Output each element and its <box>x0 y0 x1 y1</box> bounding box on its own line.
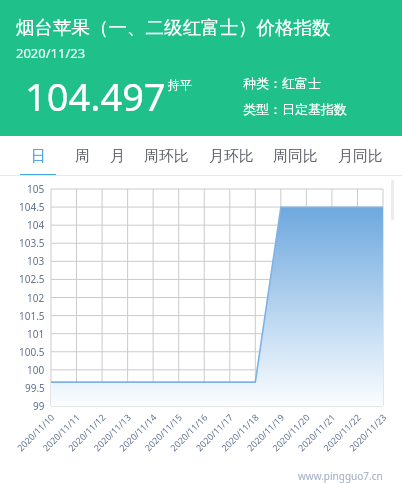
staticText: 持平 <box>168 77 192 92</box>
staticText: 月环比 <box>209 147 254 166</box>
staticText: 类型：日定基指数 <box>243 101 347 117</box>
button[interactable]: 月同比 <box>338 136 383 176</box>
button[interactable]: 周环比 <box>144 136 189 176</box>
button[interactable]: 月环比 <box>209 136 254 176</box>
staticText: 月 <box>110 147 125 166</box>
staticText: 周同比 <box>273 147 318 166</box>
staticText: 烟台苹果（一、二级红富士）价格指数 <box>16 16 331 39</box>
staticText: 月同比 <box>338 147 383 166</box>
button[interactable]: 月 <box>110 136 125 176</box>
button[interactable]: 周 <box>75 136 90 176</box>
staticText: 2020/11/23 <box>16 44 86 62</box>
staticText: 104.497 <box>25 70 166 122</box>
staticText: 种类：红富士 <box>243 75 321 91</box>
staticText: 日 <box>31 147 46 166</box>
button[interactable]: 周同比 <box>273 136 318 176</box>
button[interactable]: 日 <box>20 136 56 176</box>
staticText: 周 <box>75 147 90 166</box>
staticText: 周环比 <box>144 147 189 166</box>
